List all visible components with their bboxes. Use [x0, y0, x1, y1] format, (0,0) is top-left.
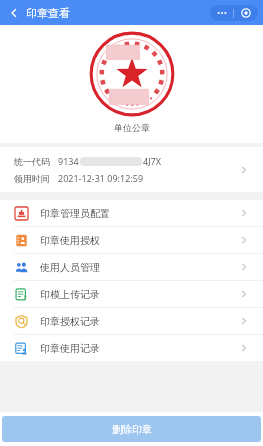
- staticText: 印章管理员配置: [40, 207, 239, 220]
- button[interactable]: 印章管理员配置: [0, 200, 263, 226]
- staticText: 单位公章: [114, 122, 150, 133]
- button[interactable]: 印章使用授权: [0, 227, 263, 253]
- staticText: 删除印章: [112, 423, 152, 436]
- button[interactable]: 使用人员管理: [0, 254, 263, 280]
- staticText: 印章使用记录: [40, 342, 239, 355]
- staticText: 印章使用授权: [40, 234, 239, 247]
- button[interactable]: 印章使用记录: [0, 335, 263, 361]
- staticText: 印章查看: [26, 6, 70, 20]
- button[interactable]: Back: [4, 3, 24, 23]
- button[interactable]: 印章授权记录: [0, 308, 263, 334]
- staticText: 2021-12-31 09:12:59: [58, 172, 144, 184]
- button[interactable]: Close: [234, 5, 258, 21]
- staticText: 4J7X: [143, 155, 162, 167]
- staticText: 使用人员管理: [40, 261, 239, 274]
- staticText: 印模上传记录: [40, 288, 239, 301]
- button[interactable]: 删除印章: [2, 416, 261, 442]
- button[interactable]: More: [210, 5, 233, 21]
- staticText: 领用时间: [14, 173, 50, 184]
- button[interactable]: 统一代码: [0, 147, 263, 192]
- staticText: 印章授权记录: [40, 315, 239, 328]
- button[interactable]: 印模上传记录: [0, 281, 263, 307]
- staticText: 9134: [58, 155, 79, 167]
- staticText: 统一代码: [14, 156, 50, 167]
